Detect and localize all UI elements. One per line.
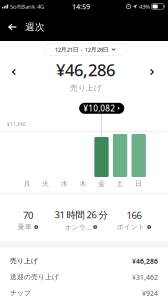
staticText: 乗車 xyxy=(18,223,32,231)
staticText: 火 xyxy=(42,179,49,188)
staticText: 14:59 xyxy=(72,2,90,11)
staticText: ¥11,340 xyxy=(7,121,26,127)
staticText: 12月21日 - 12月28日 xyxy=(55,45,109,53)
staticText: 166 xyxy=(126,209,141,221)
staticText: 土 xyxy=(117,179,124,188)
button[interactable]: 売り上げ xyxy=(0,253,168,269)
staticText: 43% xyxy=(139,2,150,10)
staticText: 送迎の売り上げ xyxy=(10,273,59,281)
button[interactable]: チップ xyxy=(0,285,168,300)
staticText: チップ xyxy=(10,289,31,297)
staticText: ¥46,286 xyxy=(56,59,115,81)
staticText: ¥10,082 xyxy=(83,103,115,114)
staticText: 売り上げ xyxy=(10,257,38,265)
staticText: 日 xyxy=(135,179,142,188)
staticText: 70 xyxy=(23,209,33,221)
staticText: 売り上げ xyxy=(70,83,102,93)
button[interactable]: 送迎の売り上げ xyxy=(0,269,168,285)
staticText: ポイント xyxy=(117,223,145,231)
staticText: 31 時間 26 分 xyxy=(54,208,107,221)
button[interactable]: ¥10,082 xyxy=(79,103,124,114)
button[interactable]: Back xyxy=(4,18,21,36)
staticText: オンラ… xyxy=(65,222,91,232)
staticText: 週次 xyxy=(25,21,45,33)
staticText: ¥924 xyxy=(142,288,158,297)
button[interactable]: 12月21日 - 12月28日 xyxy=(44,43,126,55)
button[interactable]: Previous week xyxy=(5,63,23,81)
staticText: 木 xyxy=(79,179,86,188)
staticText: 月 xyxy=(23,179,30,188)
staticText: SoftBank xyxy=(10,2,35,10)
staticText: 水 xyxy=(61,179,68,188)
button[interactable]: Next week xyxy=(143,63,161,81)
staticText: 4G xyxy=(37,2,44,10)
staticText: ¥31,462 xyxy=(132,272,158,281)
staticText: ¥46,286 xyxy=(132,256,158,265)
staticText: 金 xyxy=(98,179,105,188)
